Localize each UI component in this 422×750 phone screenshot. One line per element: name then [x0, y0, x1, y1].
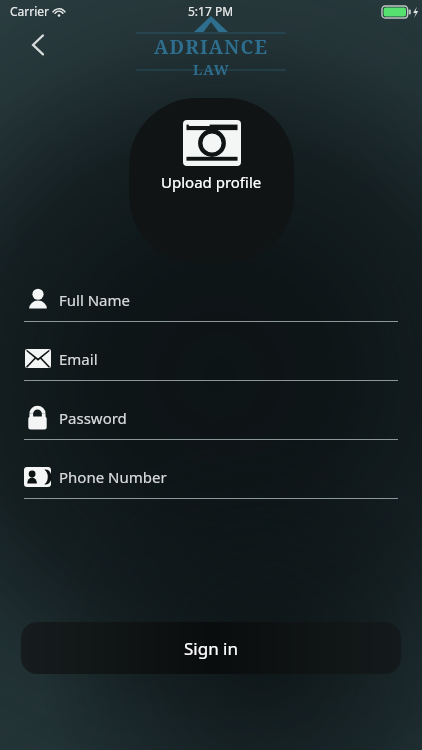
staticText: LAW	[193, 60, 230, 79]
staticText: 5:17 PM	[188, 3, 234, 19]
button[interactable]: Email	[24, 345, 398, 381]
button[interactable]: Full Name	[24, 286, 398, 322]
button[interactable]: Back	[20, 28, 56, 64]
button[interactable]: Upload profile	[129, 98, 294, 263]
staticText: Sign in	[184, 637, 238, 660]
staticText: Upload profile	[161, 172, 262, 192]
staticText: Full Name	[59, 290, 130, 310]
staticText: Password	[59, 408, 127, 428]
staticText: ADRIANCE	[154, 34, 269, 60]
staticText: Carrier	[10, 3, 50, 19]
button[interactable]: Password	[24, 404, 398, 440]
button[interactable]: Phone Number	[24, 463, 398, 499]
staticText: Email	[59, 349, 98, 369]
staticText: Phone Number	[59, 467, 167, 487]
button[interactable]: Sign in	[21, 622, 401, 674]
